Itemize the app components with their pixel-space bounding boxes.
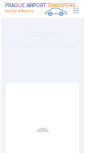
button[interactable]: Menu xyxy=(71,5,81,16)
staticText: PRAGUE AIRPORT xyxy=(5,2,46,8)
staticText: feel the difference xyxy=(5,9,34,13)
staticText: TRANSFERS xyxy=(47,2,75,8)
